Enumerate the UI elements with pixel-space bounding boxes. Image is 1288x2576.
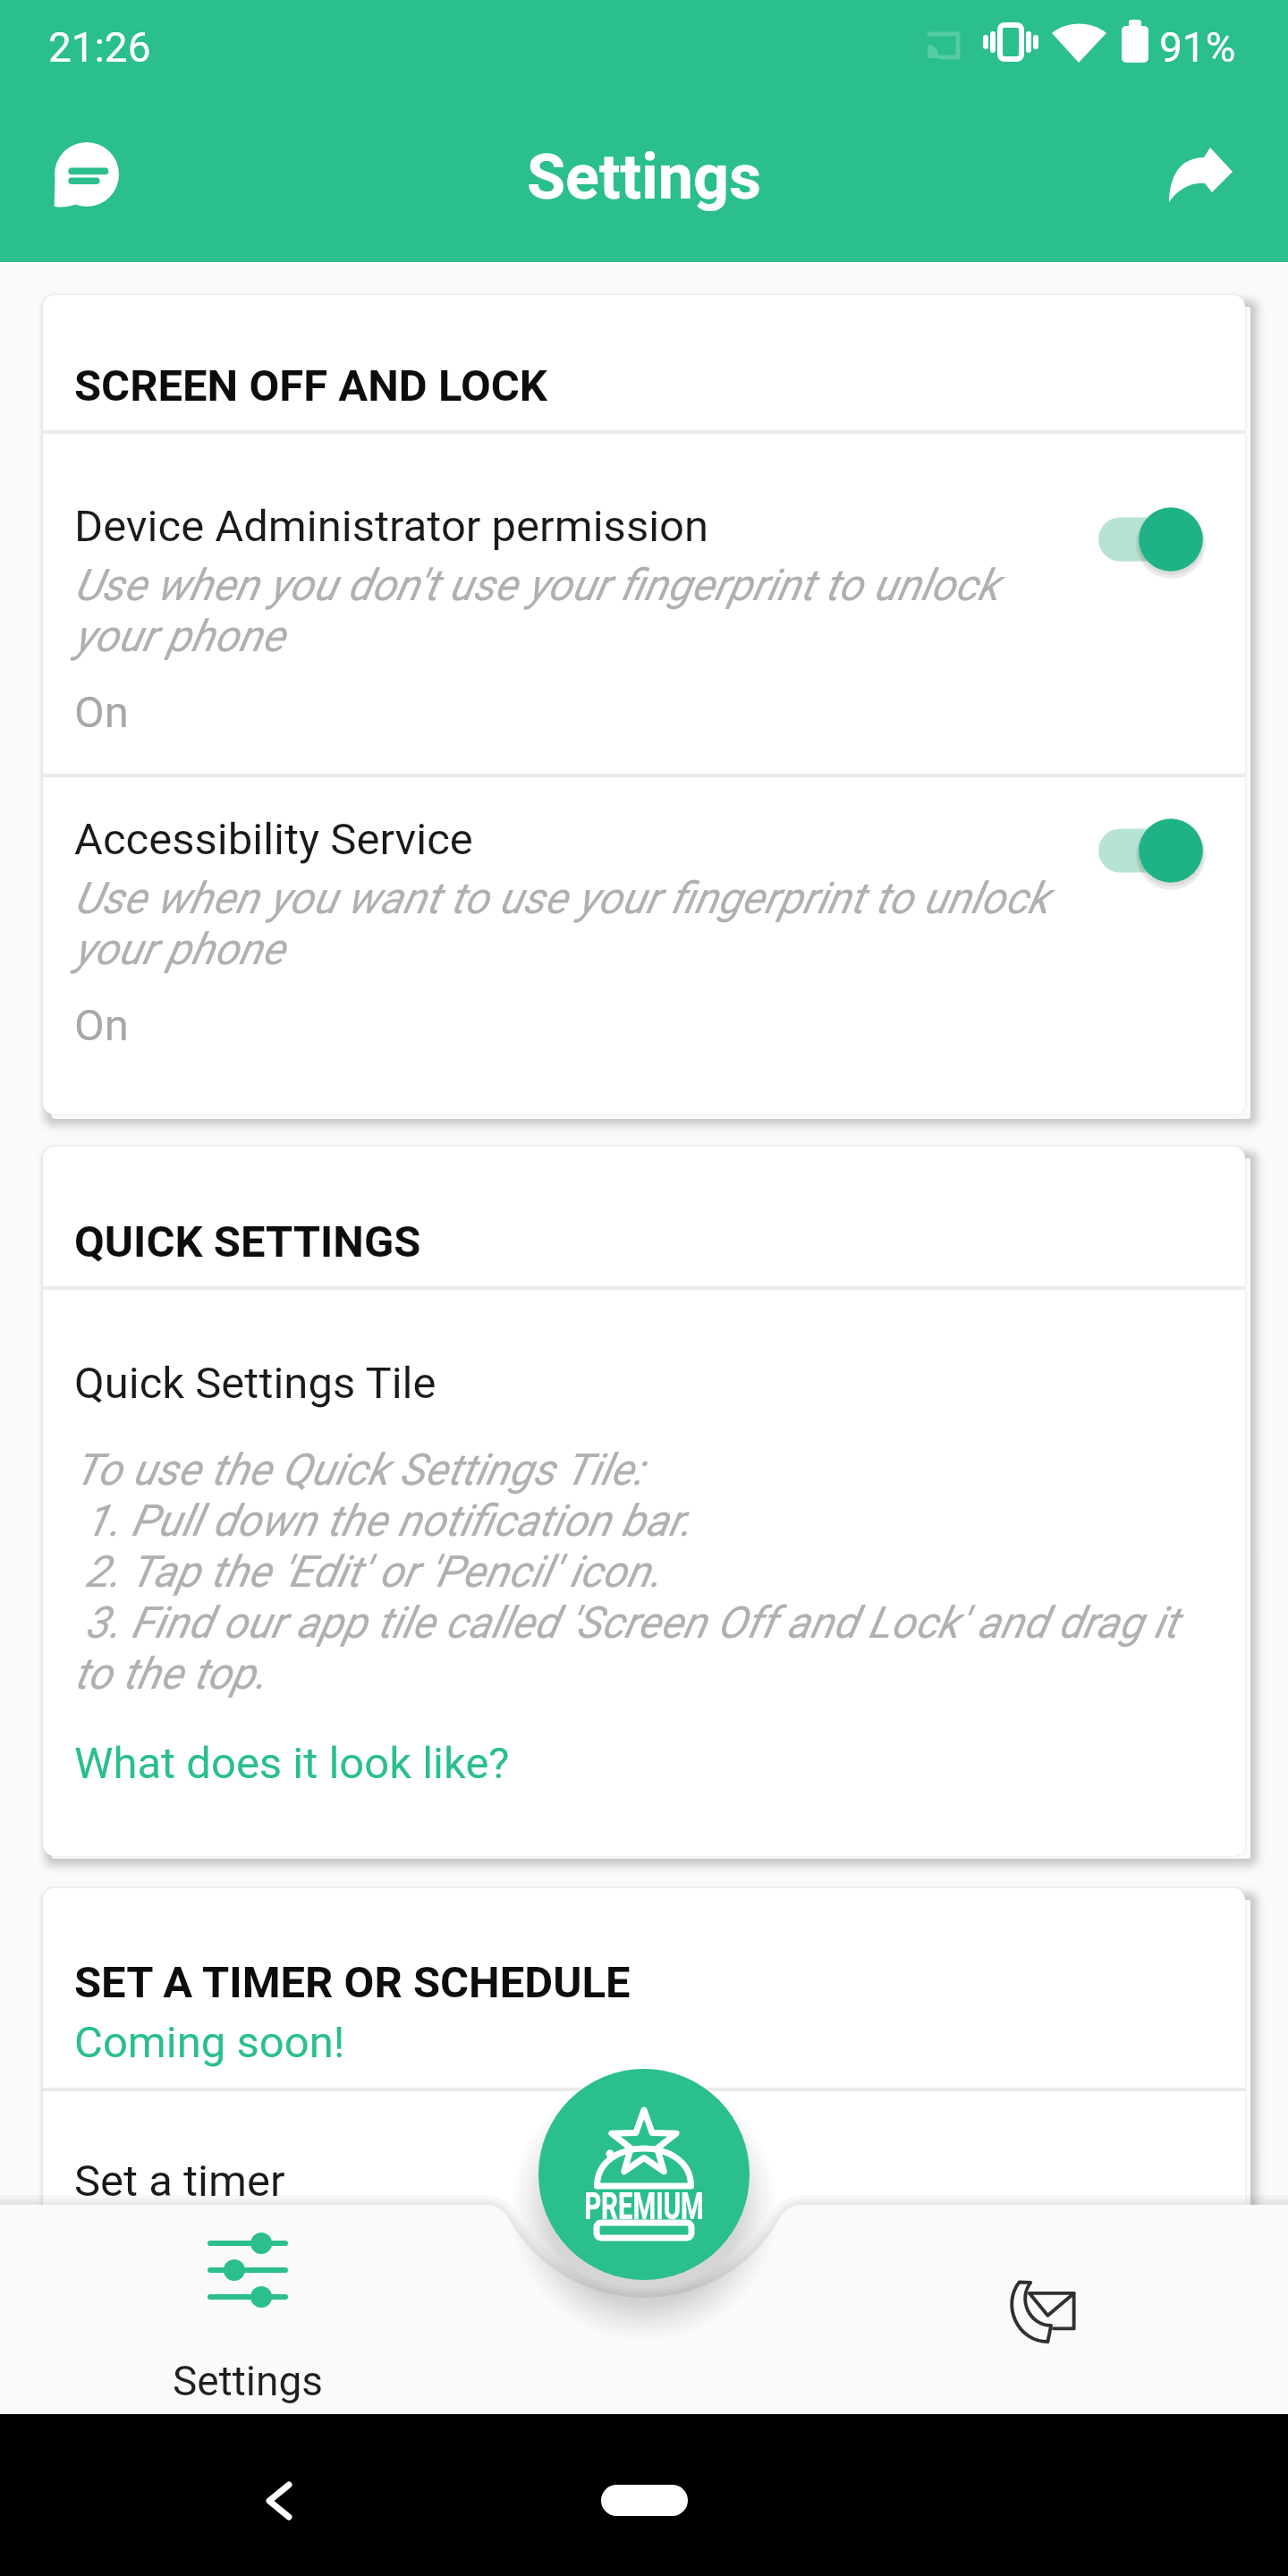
button[interactable]: What does it look like? [74,1738,510,1789]
staticText: PREMIUM [570,2184,718,2228]
button[interactable]: Feedback [30,120,143,233]
staticText: Use when you want to use your fingerprin… [74,873,1067,975]
button[interactable]: Device Administrator permission [43,434,1245,774]
staticText: To use the Quick Settings Tile: 1. Pull … [74,1445,1219,1699]
staticText: Set a timer [74,2156,285,2207]
button[interactable]: Premium [538,2069,750,2280]
button[interactable]: Share [1145,120,1258,233]
staticText: Settings [157,2357,339,2405]
staticText: QUICK SETTINGS [74,1216,421,1267]
button[interactable]: Accessibility Service [43,777,1245,1114]
staticText: 21:26 [48,23,151,72]
staticText: On [74,1000,129,1051]
staticText: On [74,687,129,738]
button[interactable]: Toggle [1098,504,1215,575]
staticText: 91% [1159,23,1236,72]
staticText: Quick Settings Tile [74,1358,436,1409]
staticText: Settings [0,140,1288,214]
button[interactable]: Set a timer [43,2091,1245,2350]
button[interactable]: Contact us [950,2253,1132,2369]
staticText: What does it look like? [74,1738,510,1789]
staticText: Coming soon! [74,2017,345,2068]
staticText: SET A TIMER OR SCHEDULE [74,1957,631,2008]
button[interactable]: Toggle [1098,815,1215,886]
staticText: Device Administrator permission [74,501,709,552]
staticText: SCREEN OFF AND LOCK [74,360,547,411]
button[interactable]: Settings [157,2205,339,2414]
staticText: Use when you don't use your fingerprint … [74,560,1067,662]
staticText: Accessibility Service [74,814,473,865]
